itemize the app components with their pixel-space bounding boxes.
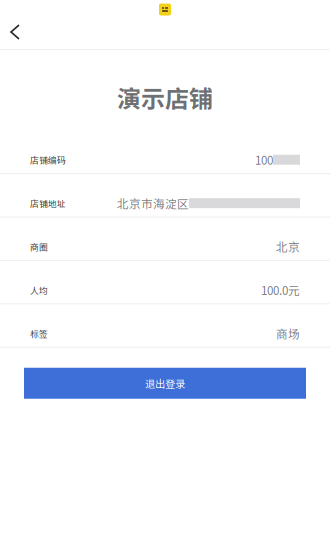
staticText: 北京 bbox=[276, 238, 300, 255]
staticText: 商圈 bbox=[30, 240, 48, 253]
staticText: 店铺地址 bbox=[30, 197, 66, 209]
button[interactable]: Back bbox=[0, 19, 33, 49]
staticText: 北京市海淀区 bbox=[117, 195, 189, 211]
staticText: 店铺编码 bbox=[30, 153, 66, 166]
staticText: 100.0元 bbox=[261, 281, 300, 298]
button[interactable]: 退出登录 bbox=[24, 368, 306, 399]
staticText: 标签 bbox=[30, 327, 48, 340]
staticText: 100 bbox=[255, 151, 273, 168]
staticText: 人均 bbox=[30, 284, 48, 296]
staticText: 退出登录 bbox=[145, 376, 185, 391]
staticText: 演示店铺 bbox=[117, 80, 213, 115]
staticText: 商场 bbox=[276, 325, 300, 342]
